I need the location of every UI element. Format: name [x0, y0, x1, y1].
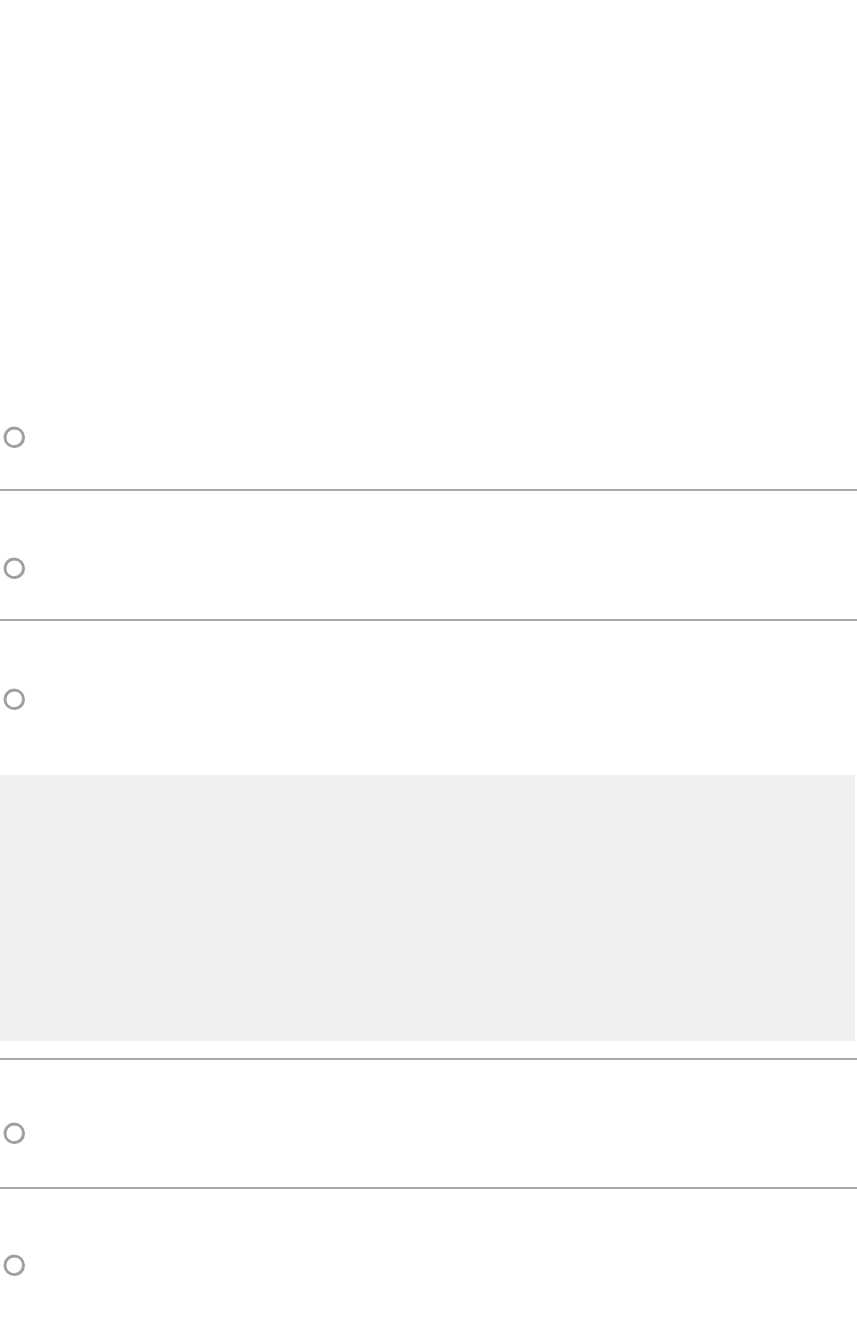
button[interactable]: Option 5 — [0, 1243, 36, 1287]
button[interactable]: Option 4 — [0, 1111, 36, 1155]
button[interactable]: Option 2 — [0, 546, 36, 590]
button[interactable]: Option 1 — [0, 415, 36, 459]
button[interactable]: Option 3 — [0, 677, 36, 721]
